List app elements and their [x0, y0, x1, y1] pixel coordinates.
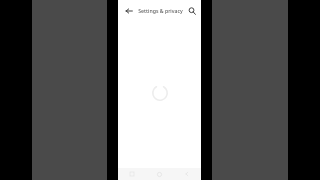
staticText: Settings & privacy — [138, 7, 183, 14]
button[interactable]: Back — [120, 2, 137, 19]
button[interactable]: Search — [183, 2, 200, 19]
